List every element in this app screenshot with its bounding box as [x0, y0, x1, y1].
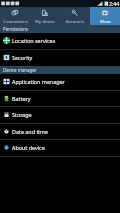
staticText: Location services — [12, 37, 56, 44]
staticText: More — [100, 19, 111, 25]
button[interactable]: Battery — [0, 91, 120, 108]
staticText: Application manager — [12, 78, 65, 85]
staticText: Storage — [12, 111, 32, 118]
staticText: Date and time — [12, 128, 48, 135]
button[interactable]: Application manager — [0, 74, 120, 91]
staticText: Permissions — [3, 26, 28, 32]
button[interactable]: Location services — [0, 33, 120, 50]
button[interactable]: Security — [0, 50, 120, 66]
other: My device — [42, 10, 48, 16]
other: Connections — [12, 10, 18, 16]
staticText: My device — [35, 19, 55, 25]
button[interactable]: More — [90, 7, 120, 25]
staticText: Accounts — [66, 19, 84, 25]
button[interactable]: Storage — [0, 107, 120, 124]
other: Accounts — [72, 10, 78, 16]
button[interactable]: About device — [0, 140, 120, 157]
button[interactable]: Connections — [0, 7, 30, 25]
button[interactable]: Date and time — [0, 124, 120, 141]
button[interactable]: My device — [30, 7, 60, 25]
staticText: Connections — [3, 19, 28, 25]
staticText: Security — [12, 54, 33, 61]
staticText: 12:44 — [106, 0, 120, 7]
other: More — [102, 10, 108, 16]
staticText: About device — [12, 144, 45, 151]
button[interactable]: Accounts — [60, 7, 90, 25]
staticText: Device manager — [3, 67, 37, 73]
staticText: Battery — [12, 95, 31, 102]
